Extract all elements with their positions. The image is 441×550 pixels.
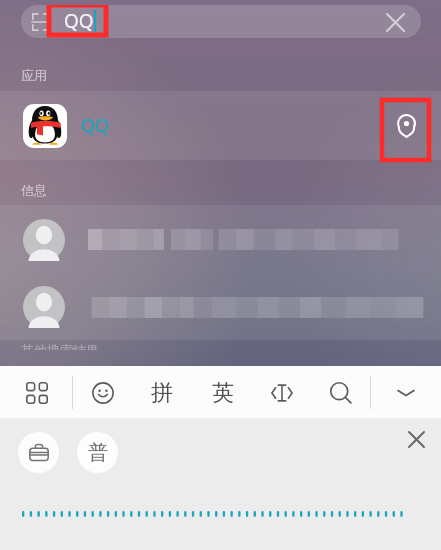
staticText: 英 bbox=[212, 379, 234, 407]
button[interactable]: Voice search bbox=[324, 376, 357, 409]
button[interactable]: QQ bbox=[21, 5, 421, 38]
staticText: 其他搜索结果 bbox=[21, 342, 99, 350]
button[interactable]: Open location bbox=[391, 111, 421, 141]
button[interactable]: Clear search bbox=[382, 9, 408, 35]
staticText: QQ bbox=[64, 8, 94, 34]
button[interactable]: QQ bbox=[0, 91, 441, 160]
staticText: 应用 bbox=[21, 67, 47, 83]
button[interactable]: Keyboard layouts bbox=[20, 376, 53, 409]
staticText: QQ bbox=[81, 113, 110, 138]
button[interactable]: Emoji bbox=[86, 376, 119, 409]
button[interactable] bbox=[0, 205, 441, 274]
button[interactable]: Mandarin input bbox=[77, 432, 118, 473]
staticText: 普 bbox=[88, 440, 108, 465]
button[interactable]: Clipboard bbox=[18, 432, 59, 473]
button[interactable]: 英 bbox=[206, 376, 239, 409]
button[interactable]: Hide keyboard bbox=[389, 376, 422, 409]
button[interactable]: Close panel bbox=[399, 422, 433, 456]
button[interactable]: Move cursor bbox=[265, 376, 298, 409]
staticText: 信息 bbox=[21, 182, 47, 198]
staticText: 拼 bbox=[151, 379, 173, 407]
button[interactable] bbox=[0, 274, 441, 340]
button[interactable]: 拼 bbox=[145, 376, 178, 409]
